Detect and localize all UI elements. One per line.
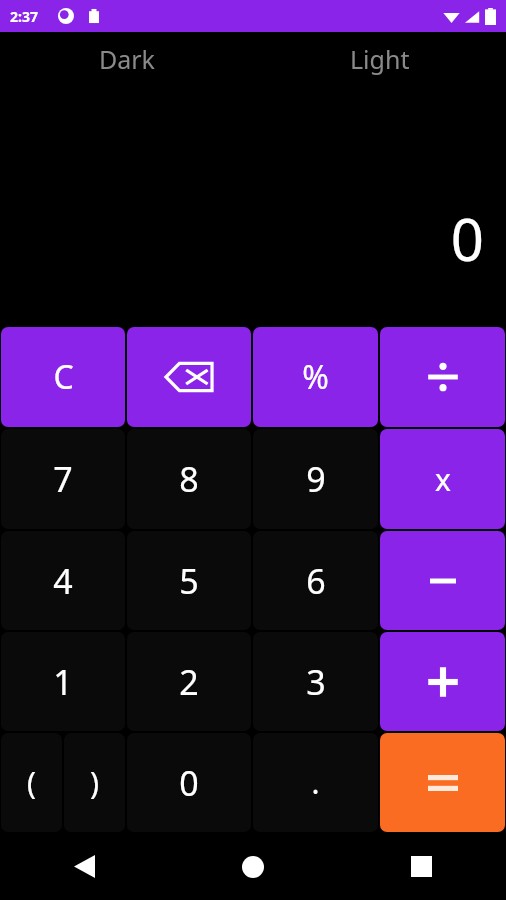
staticText: ) — [90, 762, 99, 803]
staticText: C — [53, 355, 74, 399]
button[interactable]: 2 — [127, 632, 251, 731]
button[interactable]: 4 — [1, 531, 125, 630]
button[interactable]: Minus — [380, 531, 505, 630]
staticText: x — [435, 459, 451, 500]
button[interactable]: ( — [1, 733, 62, 832]
staticText: 3 — [306, 659, 326, 705]
button[interactable]: Divide — [380, 327, 505, 427]
button[interactable]: Recent apps — [337, 833, 506, 900]
button[interactable]: Home — [168, 833, 337, 900]
staticText: Light — [350, 42, 410, 76]
button[interactable]: Plus — [380, 632, 505, 731]
button[interactable]: 3 — [253, 632, 378, 731]
staticText: 5 — [179, 558, 199, 604]
button[interactable]: Back — [0, 833, 168, 900]
staticText: 7 — [53, 456, 73, 502]
staticText: 4 — [53, 558, 73, 604]
button[interactable]: 0 — [127, 733, 251, 832]
staticText: 9 — [306, 456, 326, 502]
button[interactable]: 1 — [1, 632, 125, 731]
button[interactable]: x — [380, 429, 505, 529]
staticText: 0 — [179, 760, 199, 806]
button[interactable]: Light — [253, 32, 506, 86]
staticText: 2:37 — [10, 7, 38, 26]
button[interactable]: ) — [64, 733, 125, 832]
button[interactable]: 5 — [127, 531, 251, 630]
button[interactable]: Backspace — [127, 327, 251, 427]
staticText: % — [302, 355, 329, 399]
staticText: 2 — [179, 659, 199, 705]
button[interactable]: 7 — [1, 429, 125, 529]
staticText: 6 — [306, 558, 326, 604]
button[interactable]: 6 — [253, 531, 378, 630]
staticText: 1 — [53, 659, 73, 705]
button[interactable]: 8 — [127, 429, 251, 529]
staticText: ( — [27, 762, 36, 803]
staticText: . — [311, 762, 320, 803]
button[interactable]: Equals — [380, 733, 505, 832]
staticText: 0 — [450, 199, 484, 278]
button[interactable]: 9 — [253, 429, 378, 529]
button[interactable]: % — [253, 327, 378, 427]
button[interactable]: C — [1, 327, 125, 427]
staticText: Dark — [99, 42, 155, 76]
staticText: 8 — [179, 456, 199, 502]
button[interactable]: . — [253, 733, 378, 832]
button[interactable]: Dark — [0, 32, 253, 86]
